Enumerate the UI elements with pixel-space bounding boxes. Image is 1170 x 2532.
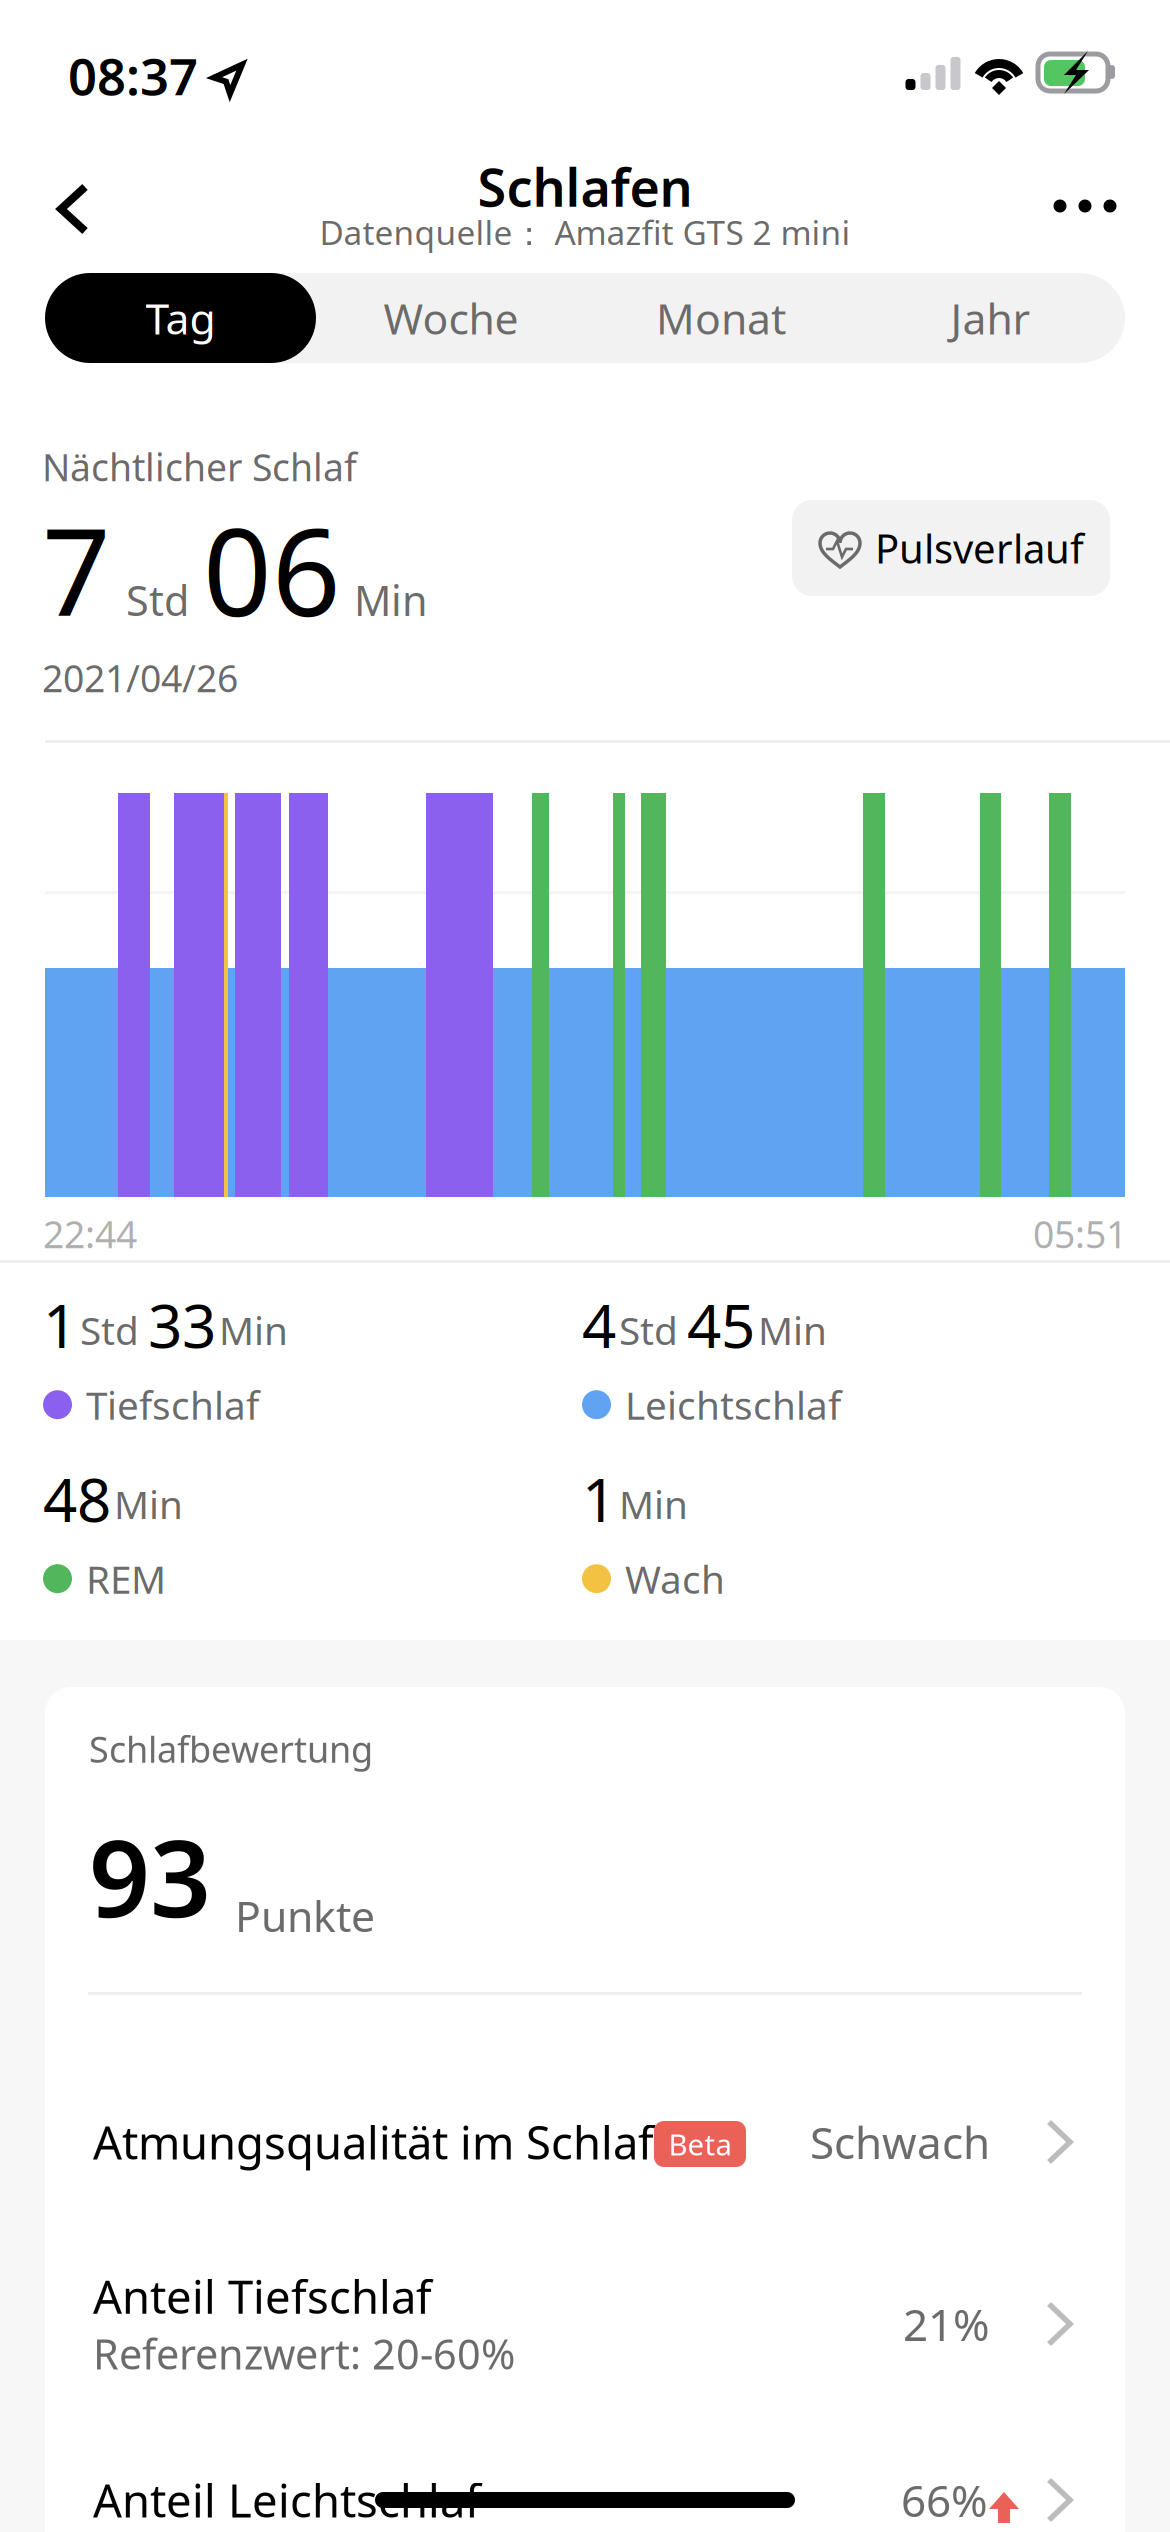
button[interactable]: Pulsverlauf (792, 500, 1110, 596)
staticText: Beta (668, 2124, 731, 2163)
staticText: 2021/04/26 (42, 653, 238, 703)
staticText: Anteil Leichtschlaf (93, 2470, 481, 2530)
staticText: 1 (43, 1285, 77, 1365)
staticText: 22:44 (43, 1209, 137, 1259)
staticText: Min (758, 1304, 827, 1356)
staticText: Woche (383, 290, 518, 346)
staticText: Min (619, 1478, 688, 1530)
staticText: 45 (687, 1285, 755, 1365)
staticText: Schlafbewertung (89, 1725, 373, 1773)
button[interactable]: Atmungsqualität im Schlaf (45, 1995, 1125, 2189)
staticText: 21% (903, 2295, 990, 2353)
staticText: Punkte (235, 1887, 375, 1944)
staticText: Monat (656, 290, 786, 346)
staticText: REM (86, 1553, 166, 1604)
staticText: 7 (42, 490, 111, 649)
staticText: 08:37 (68, 42, 198, 109)
staticText: Schwach (810, 2113, 990, 2171)
staticText: 05:51 (1033, 1209, 1127, 1259)
staticText: Nächtlicher Schlaf (42, 442, 357, 492)
staticText: 33 (148, 1285, 216, 1365)
staticText: Leichtschlaf (625, 1379, 841, 1430)
button[interactable]: More options (1023, 133, 1147, 279)
button[interactable]: Anteil Leichtschlaf (45, 2387, 1125, 2532)
staticText: 66% (901, 2471, 988, 2529)
staticText: 48 (43, 1459, 111, 1539)
staticText: Datenquelle： Amazfit GTS 2 mini (319, 210, 850, 254)
staticText: Jahr (950, 290, 1030, 346)
staticText: 4 (582, 1285, 616, 1365)
staticText: Std (126, 572, 189, 627)
button[interactable]: Back (15, 136, 135, 282)
staticText: Referenzwert: 20-60% (93, 2326, 515, 2381)
staticText: Tag (145, 290, 215, 346)
staticText: Wach (625, 1553, 725, 1604)
staticText: 93 (89, 1805, 211, 1947)
staticText: Pulsverlauf (875, 521, 1084, 574)
staticText: Min (219, 1304, 288, 1356)
staticText: Tiefschlaf (86, 1379, 259, 1430)
staticText: Schlafen (477, 152, 692, 221)
staticText: Min (114, 1478, 183, 1530)
button[interactable]: Monat (586, 273, 856, 363)
staticText: 1 (582, 1459, 616, 1539)
button[interactable]: Anteil Tiefschlaf (45, 2189, 1125, 2387)
staticText: 06 (203, 490, 341, 649)
staticText: Atmungsqualität im Schlaf (93, 2112, 654, 2172)
staticText: Std (80, 1304, 139, 1356)
button[interactable]: Tag (45, 273, 316, 363)
staticText: Min (354, 572, 428, 627)
button[interactable]: Woche (316, 273, 586, 363)
button[interactable]: Jahr (856, 273, 1125, 363)
staticText: Anteil Tiefschlaf (93, 2266, 432, 2326)
staticText: Std (619, 1304, 678, 1356)
